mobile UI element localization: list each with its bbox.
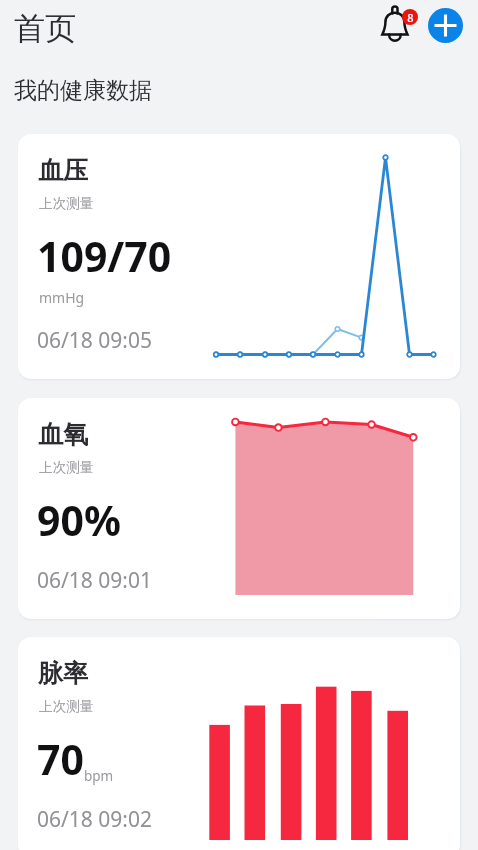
staticText: 脉率 [38, 658, 88, 689]
staticText: 06/18 09:02 [37, 805, 152, 834]
staticText: 06/18 09:05 [37, 326, 152, 355]
staticText: 109/70 [37, 228, 172, 284]
button[interactable]: Notifications [374, 2, 418, 46]
staticText: 上次测量 [39, 195, 94, 212]
staticText: 90% [37, 492, 121, 548]
staticText: 上次测量 [39, 459, 94, 476]
button[interactable]: 血氧 [18, 398, 460, 619]
staticText: bpm [84, 767, 114, 785]
staticText: 血氧 [38, 419, 88, 450]
button[interactable]: Add [428, 8, 463, 43]
staticText: 我的健康数据 [14, 76, 152, 105]
staticText: 06/18 09:01 [37, 566, 152, 595]
staticText: 8 [407, 10, 414, 25]
staticText: 上次测量 [39, 698, 94, 715]
button[interactable]: 脉率 [18, 637, 460, 850]
staticText: 首页 [14, 9, 76, 48]
staticText: 70 [37, 731, 84, 787]
button[interactable]: 血压 [18, 134, 460, 379]
staticText: 血压 [38, 155, 88, 186]
staticText: mmHg [39, 288, 85, 307]
